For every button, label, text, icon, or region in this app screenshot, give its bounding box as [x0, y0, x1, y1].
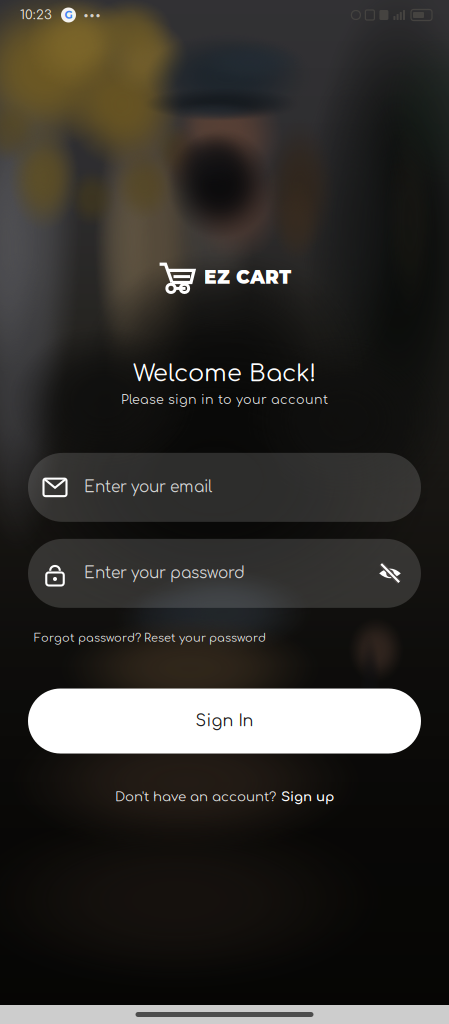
staticText: Welcome Back!	[133, 360, 316, 387]
staticText: Forgot password? Reset your password	[34, 632, 266, 644]
staticText: EZ CART	[204, 266, 291, 288]
button[interactable]: Enter your password	[28, 539, 421, 608]
staticText: G	[64, 8, 72, 21]
staticText: •••	[83, 8, 101, 21]
staticText: Please sign in to your account	[121, 393, 328, 407]
staticText: 10:23	[20, 8, 52, 22]
button[interactable]: Don't have an account?	[115, 789, 334, 804]
staticText: Enter your password	[84, 565, 245, 582]
staticText: Sign up	[281, 789, 334, 804]
staticText: Enter your email	[84, 479, 212, 496]
staticText: Sign In	[195, 712, 253, 730]
button[interactable]: Enter your email	[28, 453, 421, 522]
staticText: Don't have an account?	[115, 789, 276, 804]
button[interactable]: Sign In	[28, 688, 421, 753]
button[interactable]: Forgot password? Reset your password	[34, 632, 266, 644]
